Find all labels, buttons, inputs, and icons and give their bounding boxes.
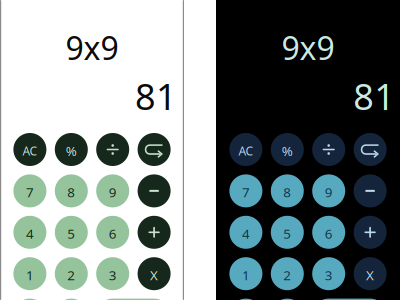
button[interactable]: X [138, 257, 171, 290]
button[interactable]: 1 [13, 257, 46, 290]
staticText: 9 [325, 183, 333, 201]
staticText: 4 [26, 225, 34, 242]
staticText: 5 [67, 225, 75, 242]
staticText: 3 [109, 266, 117, 284]
button[interactable]: 3 [312, 257, 345, 290]
staticText: 9 [109, 183, 117, 201]
button[interactable]: 4 [13, 216, 46, 249]
button[interactable]: X [354, 257, 387, 290]
staticText: X [150, 266, 158, 284]
staticText: 5 [283, 225, 291, 242]
button[interactable]: 2 [271, 257, 304, 290]
button[interactable]: 7 [229, 174, 262, 207]
button[interactable]: 9 [312, 174, 345, 207]
button[interactable]: Undo [354, 133, 387, 166]
staticText: 7 [242, 183, 250, 201]
staticText: 8 [283, 183, 291, 201]
staticText: % [66, 142, 77, 160]
button[interactable]: AC [13, 133, 46, 166]
button[interactable]: Divide [312, 133, 345, 166]
staticText: AC [238, 143, 253, 159]
button[interactable]: Subtract [354, 174, 387, 207]
staticText: 7 [26, 183, 34, 201]
staticText: 1 [242, 266, 250, 284]
button[interactable]: Subtract [138, 174, 171, 207]
staticText: 3 [325, 266, 333, 284]
button[interactable]: 5 [55, 216, 88, 249]
button[interactable]: = [96, 299, 171, 300]
button[interactable]: = [312, 299, 387, 300]
button[interactable]: 9 [96, 174, 129, 207]
staticText: 6 [325, 225, 333, 242]
button[interactable]: % [271, 133, 304, 166]
staticText: 6 [109, 225, 117, 242]
staticText: 8 [67, 183, 75, 201]
button[interactable]: 6 [96, 216, 129, 249]
staticText: 9x9 [65, 26, 118, 69]
staticText: 9x9 [281, 26, 334, 69]
button[interactable]: AC [229, 133, 262, 166]
staticText: AC [22, 143, 37, 159]
button[interactable]: 3 [96, 257, 129, 290]
button[interactable]: 7 [13, 174, 46, 207]
staticText: 2 [283, 266, 291, 284]
button[interactable]: . [271, 299, 304, 300]
button[interactable]: 4 [229, 216, 262, 249]
button[interactable]: 0 [229, 299, 262, 300]
staticText: 4 [242, 225, 250, 242]
staticText: 1 [26, 266, 34, 284]
button[interactable]: 1 [229, 257, 262, 290]
staticText: 2 [67, 266, 75, 284]
button[interactable]: 5 [271, 216, 304, 249]
staticText: 81 [353, 72, 395, 120]
staticText: X [366, 266, 374, 284]
button[interactable]: . [55, 299, 88, 300]
button[interactable]: 0 [13, 299, 46, 300]
button[interactable]: Undo [138, 133, 171, 166]
button[interactable]: 2 [55, 257, 88, 290]
button[interactable]: 8 [271, 174, 304, 207]
button[interactable]: 6 [312, 216, 345, 249]
staticText: 81 [135, 72, 177, 120]
staticText: % [282, 142, 293, 160]
button[interactable]: Add [354, 216, 387, 249]
button[interactable]: Divide [96, 133, 129, 166]
button[interactable]: Add [138, 216, 171, 249]
button[interactable]: % [55, 133, 88, 166]
button[interactable]: 8 [55, 174, 88, 207]
